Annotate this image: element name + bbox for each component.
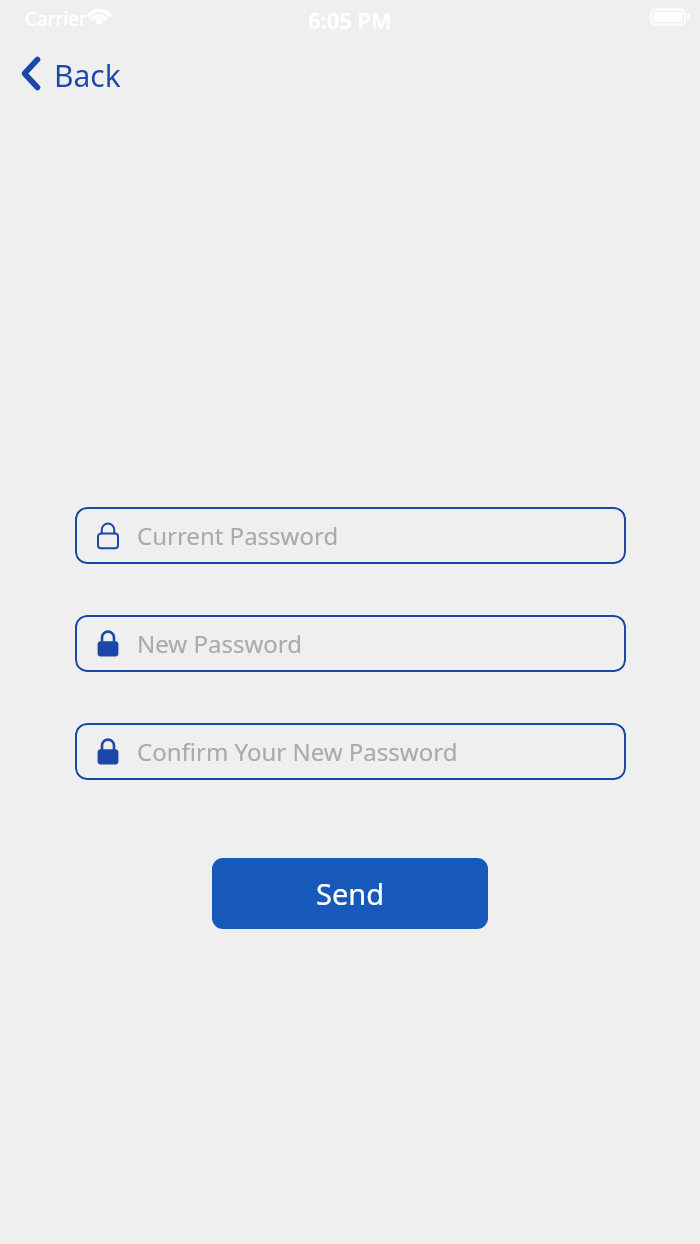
staticText: New Password: [137, 627, 302, 660]
button[interactable]: Current Password: [75, 507, 626, 564]
button[interactable]: Confirm Your New Password: [75, 723, 626, 780]
button[interactable]: Send: [212, 858, 488, 929]
staticText: Send: [316, 874, 385, 913]
button[interactable]: New Password: [75, 615, 626, 672]
button[interactable]: Back: [21, 53, 121, 94]
staticText: 6:05 PM: [308, 5, 392, 35]
staticText: Carrier: [25, 6, 87, 32]
staticText: Confirm Your New Password: [137, 735, 458, 768]
staticText: Current Password: [137, 519, 339, 552]
staticText: Back: [54, 55, 121, 96]
